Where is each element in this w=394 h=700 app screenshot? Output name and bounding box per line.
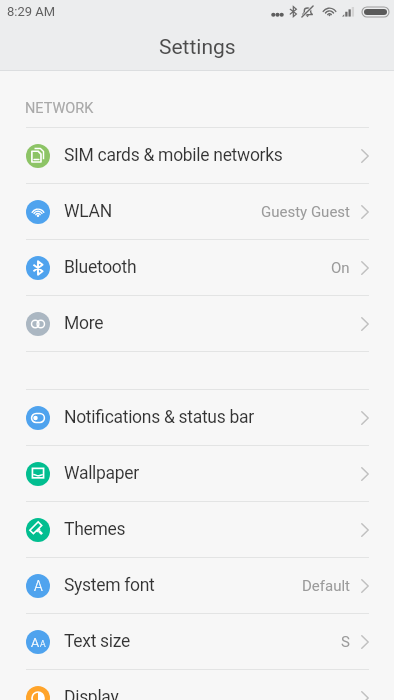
button[interactable]: A — [0, 558, 394, 613]
button[interactable]: Notifications & status bar — [0, 390, 394, 445]
staticText: System font — [64, 575, 302, 596]
staticText: Default — [302, 577, 350, 595]
other: Wi-Fi signal — [323, 6, 336, 18]
button[interactable]: Themes — [0, 502, 394, 557]
staticText: Display — [64, 687, 350, 700]
staticText: Wallpaper — [64, 463, 350, 484]
staticText: Notifications & status bar — [64, 407, 350, 428]
staticText: A — [34, 578, 43, 594]
staticText: A — [31, 635, 40, 650]
staticText: Settings — [159, 35, 236, 60]
staticText: SIM cards & mobile networks — [64, 145, 350, 166]
button[interactable]: More — [0, 296, 394, 351]
button[interactable]: WLAN — [0, 184, 394, 239]
staticText: S — [341, 633, 350, 651]
other: More notifications — [272, 6, 283, 18]
staticText: Themes — [64, 519, 350, 540]
button[interactable]: SIM cards & mobile networks — [0, 128, 394, 183]
button[interactable]: A — [0, 614, 394, 669]
other: Mobile signal — [342, 6, 355, 18]
other: Bluetooth on — [289, 5, 298, 18]
staticText: Bluetooth — [64, 257, 331, 278]
staticText: NETWORK — [25, 100, 94, 117]
button[interactable]: Bluetooth — [0, 240, 394, 295]
staticText: On — [331, 259, 350, 277]
other: Silent mode — [301, 5, 314, 18]
staticText: WLAN — [64, 201, 261, 222]
other: Battery full — [362, 7, 389, 17]
button[interactable]: Wallpaper — [0, 446, 394, 501]
staticText: A — [40, 639, 46, 650]
staticText: More — [64, 313, 350, 334]
staticText: 8:29 AM — [7, 4, 56, 19]
staticText: Text size — [64, 631, 341, 652]
staticText: Guesty Guest — [261, 203, 350, 221]
button[interactable]: Display — [0, 670, 394, 700]
